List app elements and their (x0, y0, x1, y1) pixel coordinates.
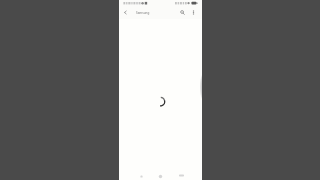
button[interactable]: More options (188, 7, 198, 18)
button[interactable]: Recent apps (175, 169, 187, 180)
button[interactable]: Back (135, 170, 147, 180)
button[interactable]: Navigate up (119, 7, 131, 18)
button[interactable]: Home (154, 170, 166, 180)
staticText: Samsung (136, 11, 150, 15)
button[interactable]: Search (177, 7, 188, 18)
